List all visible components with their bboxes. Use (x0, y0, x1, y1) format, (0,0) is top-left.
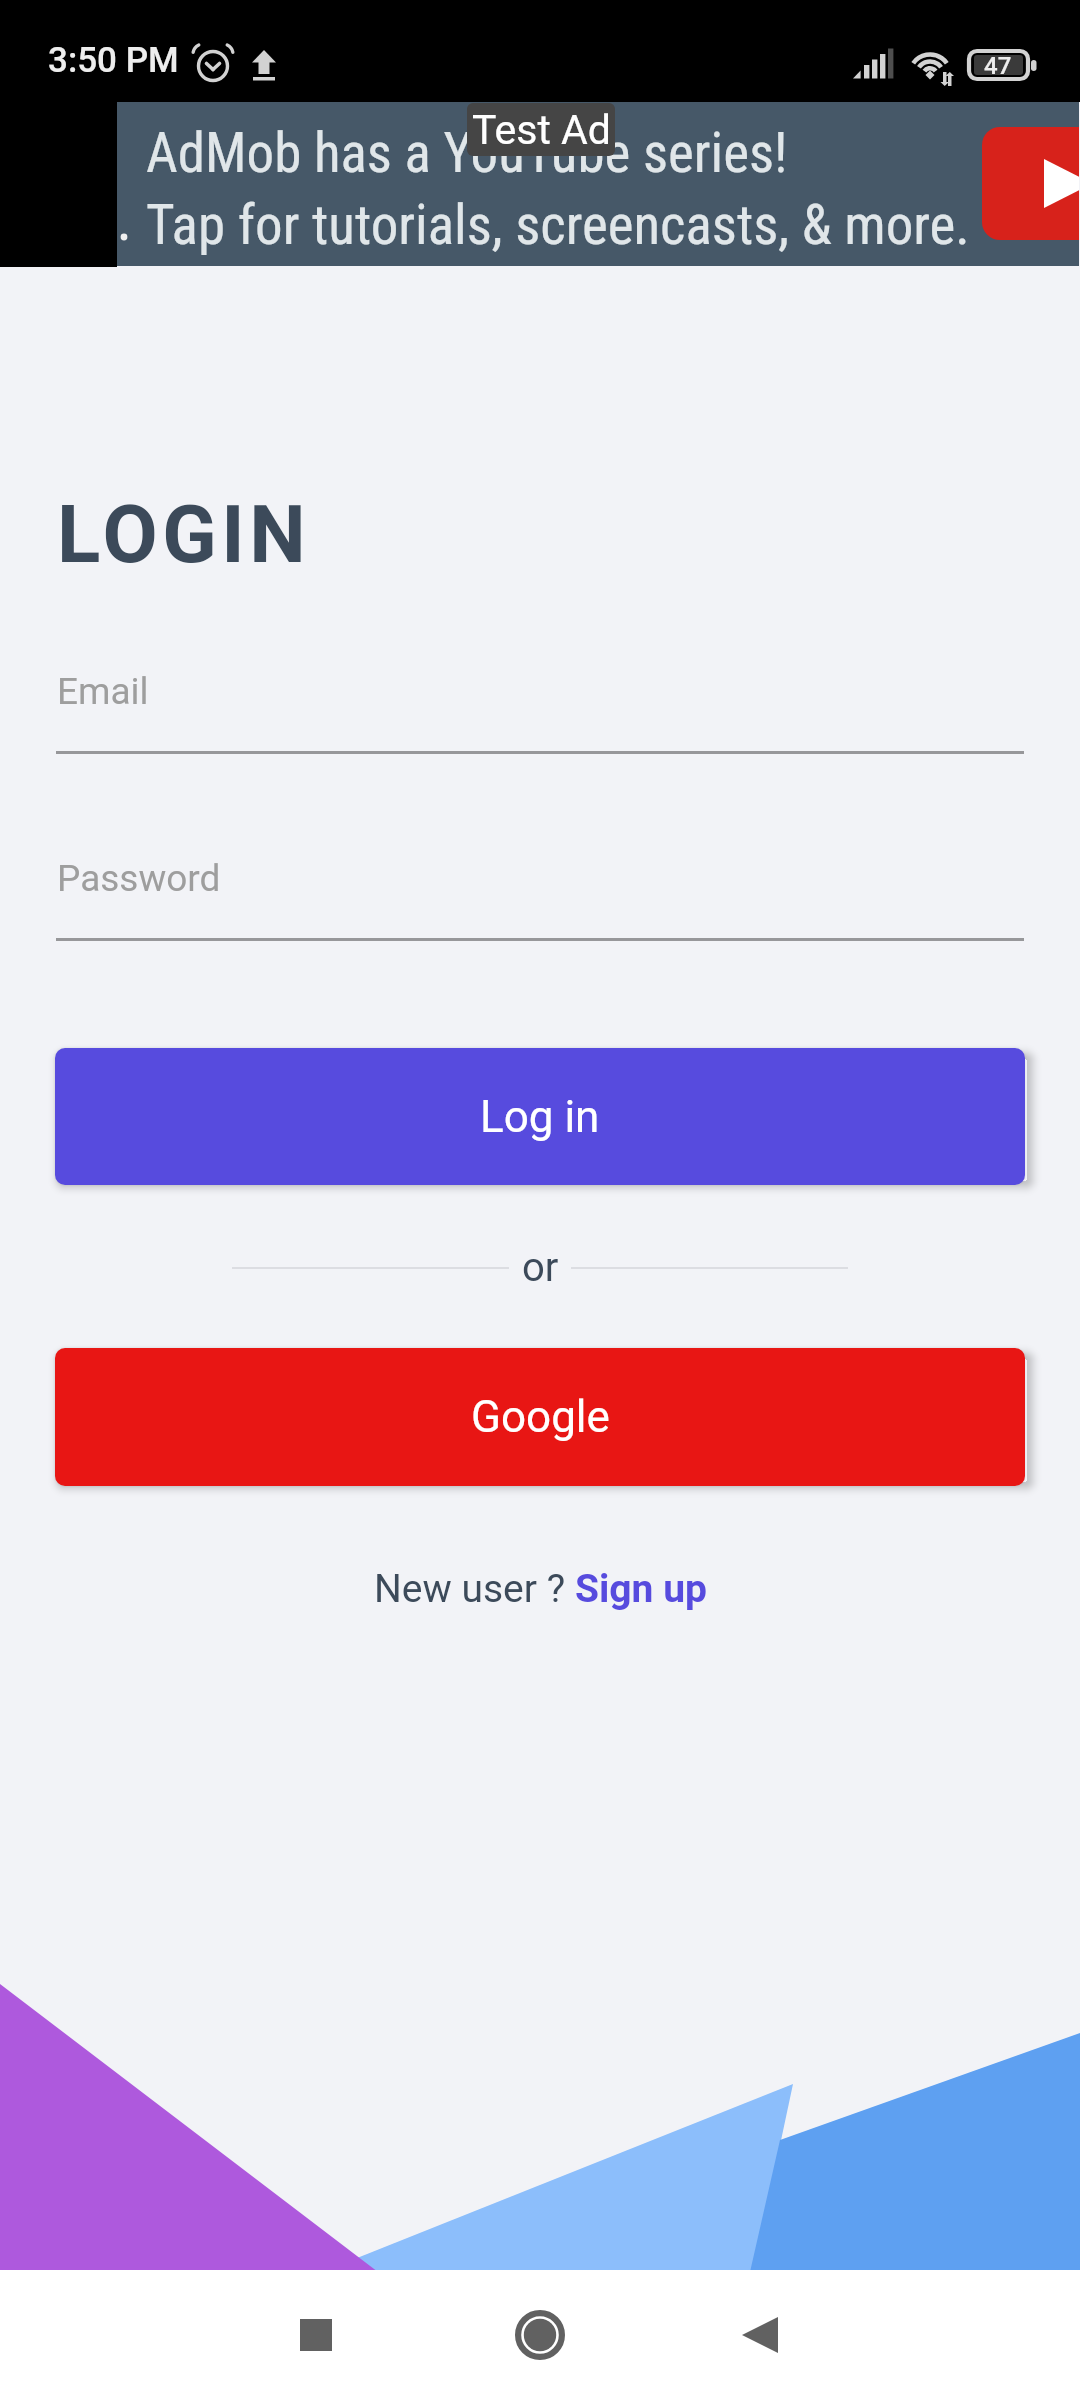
staticText: or (522, 1244, 559, 1291)
button[interactable]: Log in (55, 1048, 1025, 1185)
button[interactable]: Google (55, 1348, 1025, 1486)
staticText: Log in (480, 1091, 600, 1143)
staticText: AdMob has a YouTube series! (146, 121, 788, 185)
staticText: New user ? (374, 1566, 575, 1612)
staticText: Test Ad (472, 106, 611, 154)
button[interactable]: Recent apps (270, 2289, 362, 2381)
staticText: Google (471, 1391, 610, 1443)
button[interactable]: Home (494, 2289, 586, 2381)
staticText: 47 (984, 52, 1012, 80)
staticText: 3:50 PM (48, 40, 179, 81)
button[interactable]: Back (714, 2289, 806, 2381)
staticText: Email (57, 670, 149, 713)
staticText: Password (57, 857, 221, 900)
button[interactable]: New user ? (374, 1566, 707, 1612)
staticText: Sign up (575, 1566, 707, 1612)
staticText: Tap for tutorials, screencasts, & more. (146, 193, 970, 257)
button[interactable]: Password (56, 857, 1024, 941)
button[interactable]: AdMob has a YouTube series! (117, 102, 1079, 266)
staticText: LOGIN (57, 488, 311, 582)
button[interactable]: Email (56, 670, 1024, 754)
